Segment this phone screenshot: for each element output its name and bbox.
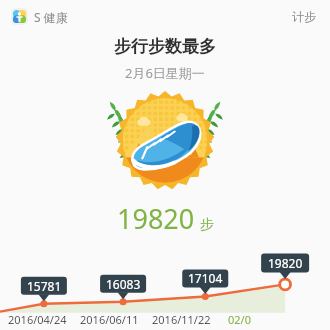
staticText: 步 <box>200 216 214 234</box>
staticText: 2月6日星期一 <box>125 64 205 82</box>
staticText: 19820 <box>117 200 195 237</box>
staticText: 19820 <box>268 255 303 271</box>
staticText: 2016/11/22 <box>152 312 211 327</box>
button[interactable]: S 健康 <box>11 6 72 27</box>
button[interactable]: 计步 <box>289 6 319 27</box>
staticText: 16083 <box>106 276 141 292</box>
staticText: 15781 <box>27 278 62 294</box>
staticText: 计步 <box>292 9 316 24</box>
staticText: 2016/06/11 <box>80 312 139 327</box>
staticText: 2016/04/24 <box>8 312 67 327</box>
staticText: S 健康 <box>34 9 68 25</box>
staticText: 17104 <box>188 270 223 286</box>
staticText: 02/0 <box>228 312 251 327</box>
staticText: 步行步数最多 <box>114 36 216 57</box>
other: 步行成就徽章 <box>102 88 228 192</box>
